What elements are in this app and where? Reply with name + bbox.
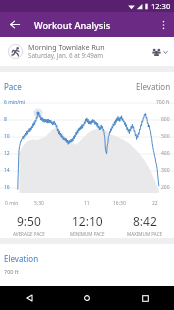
staticText: 11 (84, 200, 90, 207)
staticText: Pace (4, 81, 22, 92)
staticText: 6 min/mi (4, 99, 26, 106)
staticText: MAXIMUM PACE (127, 231, 163, 237)
staticText: 5:30 (34, 200, 44, 207)
staticText: Elevation (136, 81, 171, 92)
button[interactable]: Participants (146, 44, 174, 60)
staticText: 12:10 (72, 213, 103, 229)
staticText: Morning Townlake Run (28, 42, 105, 52)
button[interactable]: Back (0, 12, 30, 37)
staticText: 8 (4, 116, 7, 123)
staticText: Saturday, Jan. 6 at 9:49am (28, 51, 104, 59)
staticText: Elevation (4, 253, 39, 264)
staticText: 400 (161, 150, 170, 157)
button[interactable]: 8:42 (116, 210, 174, 242)
staticText: 10 (4, 133, 10, 140)
staticText: MINIMUM PACE (70, 231, 105, 237)
staticText: 16 (4, 184, 10, 191)
button[interactable]: Morning Townlake Run (0, 37, 174, 66)
staticText: 22 (152, 200, 158, 207)
staticText: 12:30 (151, 1, 171, 11)
staticText: 700 ft (4, 268, 19, 275)
staticText: 300 (161, 167, 170, 174)
staticText: 12 (4, 150, 10, 157)
staticText: 16:30 (113, 200, 126, 207)
staticText: 600 (161, 116, 170, 123)
button[interactable]: 12:10 (58, 210, 116, 242)
staticText: AVERAGE PACE (13, 231, 45, 237)
staticText: 700 ft (156, 99, 170, 106)
staticText: 200 (161, 184, 170, 191)
button[interactable]: More options (152, 12, 174, 37)
button[interactable]: Back (0, 286, 58, 310)
button[interactable]: 9:50 (0, 210, 58, 242)
staticText: Workout Analysis (34, 19, 111, 32)
staticText: 14 (4, 167, 10, 174)
staticText: 8:42 (133, 213, 157, 229)
button[interactable]: Home (58, 286, 116, 310)
staticText: 9:50 (17, 213, 41, 229)
button[interactable]: Recent apps (116, 286, 174, 310)
staticText: 0 min (5, 200, 19, 207)
staticText: 500 (161, 133, 170, 140)
